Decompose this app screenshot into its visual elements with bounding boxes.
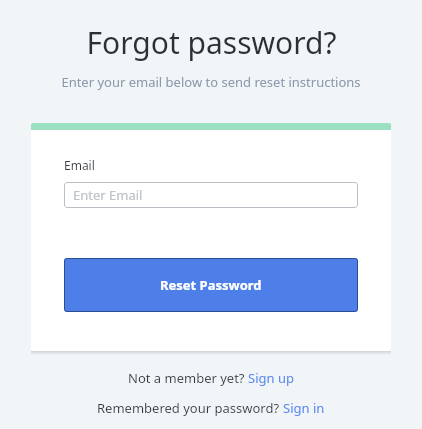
button[interactable]: Sign in — [283, 399, 325, 417]
staticText: Sign up — [248, 369, 294, 387]
staticText: Sign in — [283, 399, 325, 417]
button[interactable]: Enter Email — [64, 182, 358, 208]
staticText: Forgot password? — [86, 22, 337, 63]
button[interactable]: Sign up — [248, 369, 294, 387]
staticText: Enter Email — [73, 186, 143, 204]
button[interactable]: Reset Password — [64, 258, 358, 312]
staticText: Remembered your password? — [97, 399, 283, 417]
staticText: Reset Password — [160, 276, 262, 294]
staticText: Enter your email below to send reset ins… — [61, 73, 361, 91]
staticText: Email — [64, 157, 95, 173]
staticText: Not a member yet? — [128, 369, 248, 387]
